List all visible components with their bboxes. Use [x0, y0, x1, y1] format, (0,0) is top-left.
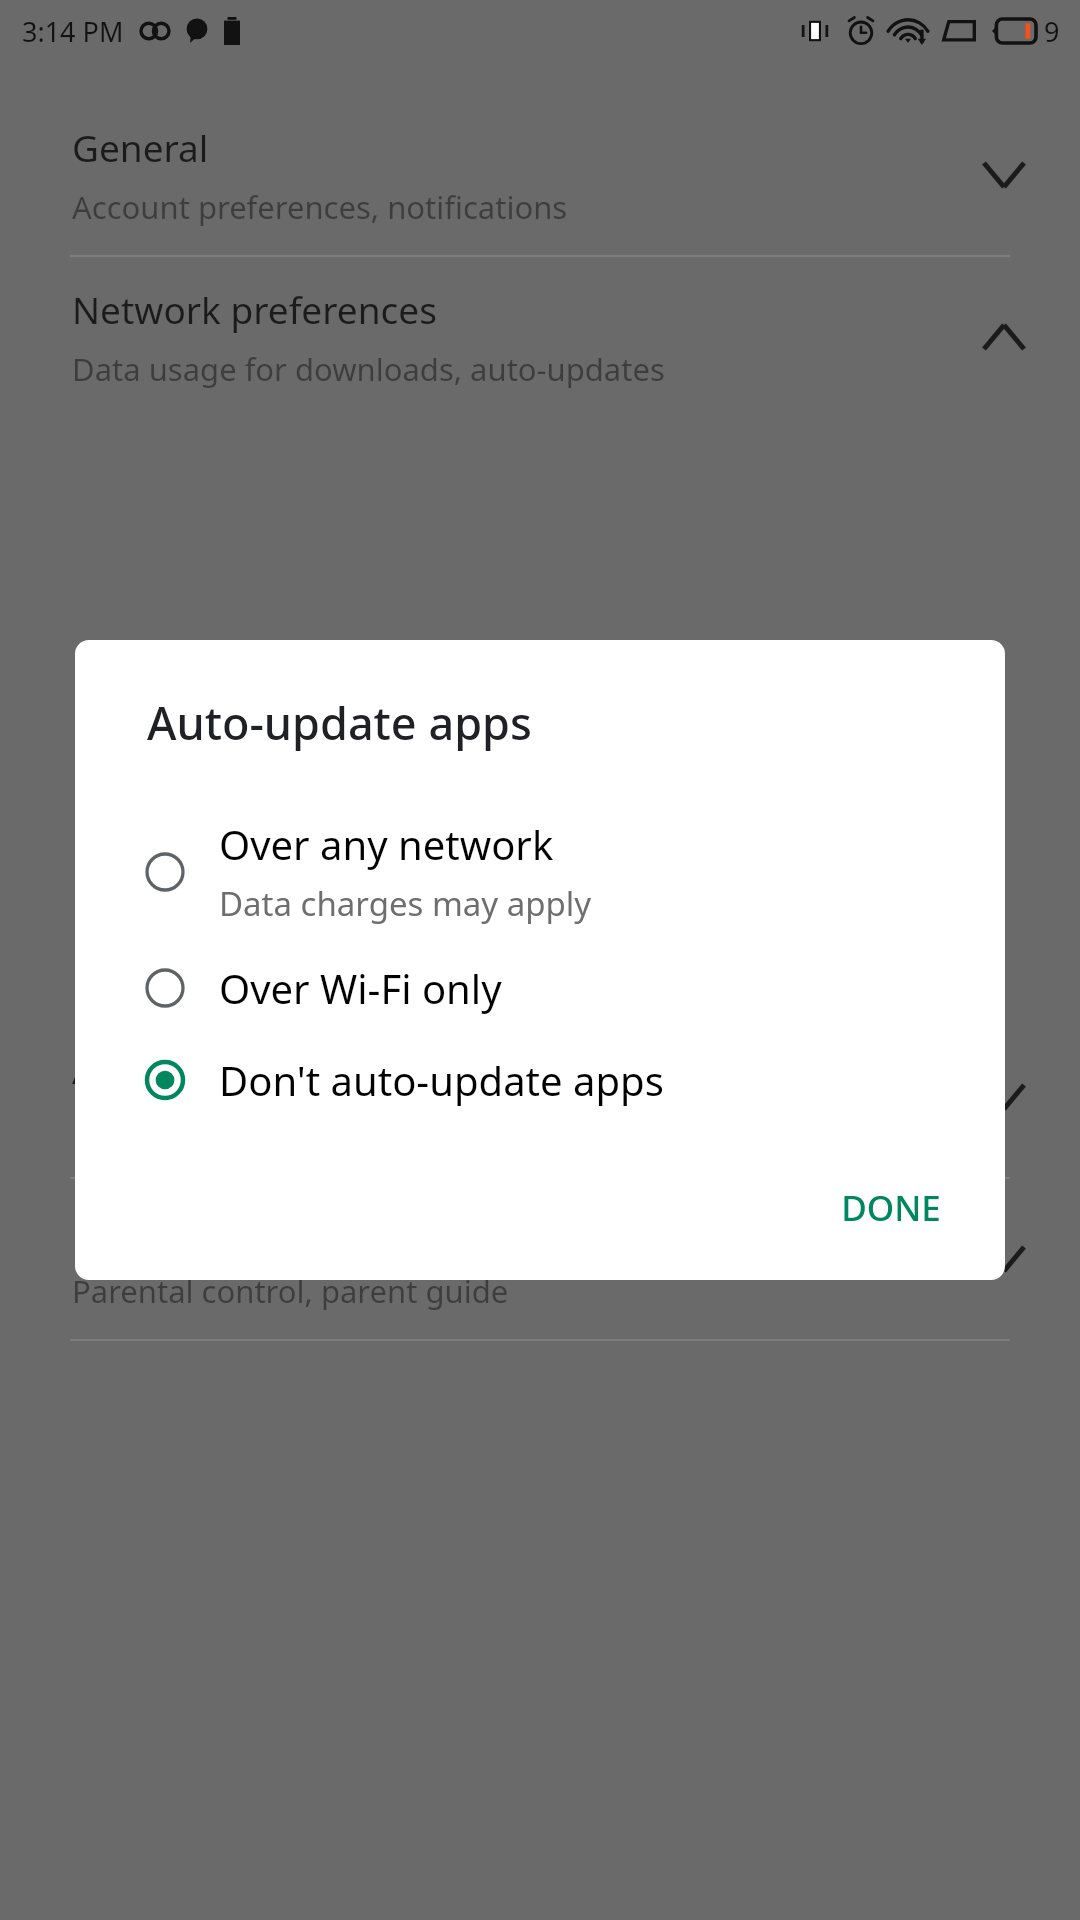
- staticText: 9: [1044, 13, 1060, 50]
- button[interactable]: DONE: [817, 1166, 965, 1250]
- staticText: Account preferences, notifications: [72, 186, 568, 228]
- button[interactable]: Don't auto-update apps: [75, 1034, 1005, 1126]
- staticText: Don't auto-update apps: [219, 1053, 664, 1107]
- staticText: DONE: [841, 1184, 941, 1232]
- staticText: Data charges may apply: [219, 881, 592, 926]
- staticText: Over any network: [219, 817, 554, 871]
- button[interactable]: Over Wi-Fi only: [75, 942, 1005, 1034]
- staticText: Data usage for downloads, auto-updates: [72, 348, 665, 390]
- staticText: Authentication: [72, 1044, 329, 1094]
- staticText: General: [72, 122, 209, 172]
- staticText: Auto-update apps: [147, 692, 532, 753]
- button[interactable]: Over any network: [75, 801, 1005, 942]
- button[interactable]: Family: [0, 1179, 1080, 1339]
- staticText: Fingerprint, purchase authentication: [72, 1108, 606, 1150]
- staticText: Parental control, parent guide: [72, 1270, 509, 1312]
- staticText: Over Wi-Fi only: [219, 961, 502, 1015]
- button[interactable]: General: [0, 95, 1080, 255]
- staticText: 3:14 PM: [22, 13, 124, 50]
- staticText: Family: [72, 1206, 185, 1256]
- button[interactable]: Authentication: [0, 1017, 1080, 1177]
- staticText: Network preferences: [72, 284, 437, 334]
- button[interactable]: Network preferences: [0, 257, 1080, 417]
